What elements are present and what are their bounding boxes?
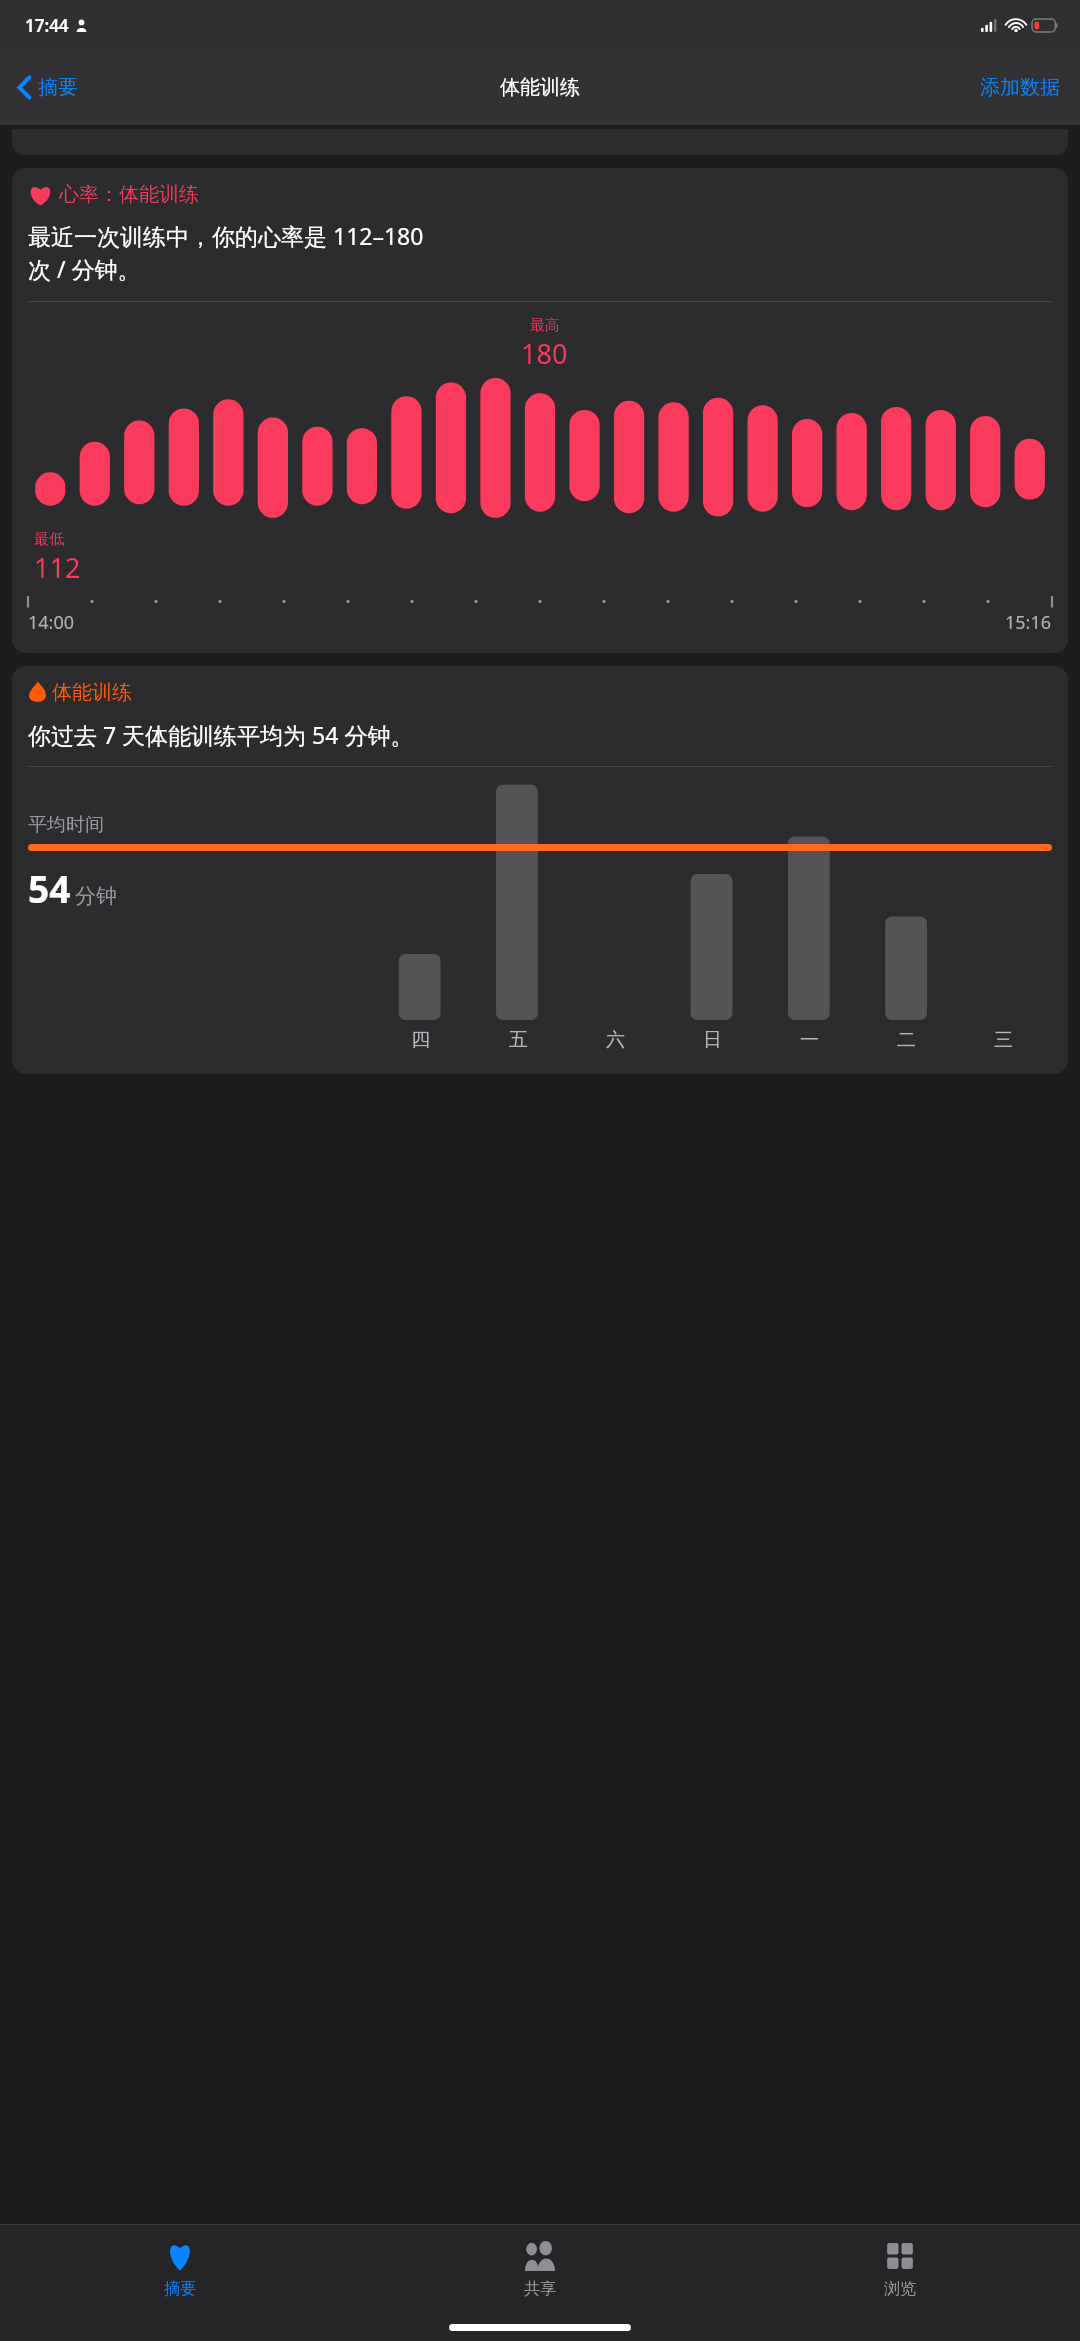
staticText: 17:44 [25, 14, 69, 37]
staticText: 日 [703, 1028, 722, 1052]
staticText: 平均时间 [28, 813, 104, 837]
staticText: 最低 [34, 530, 64, 549]
staticText: 摘要 [164, 2279, 196, 2299]
button[interactable]: 心率：体能训练 [12, 168, 1068, 653]
staticText: 最高 [530, 316, 560, 335]
staticText: 浏览 [884, 2279, 916, 2299]
button[interactable]: 浏览 [720, 2235, 1080, 2303]
button[interactable]: 添加数据 [974, 69, 1066, 106]
staticText: 14:00 [28, 610, 75, 635]
staticText: 添加数据 [980, 75, 1060, 100]
staticText: 你过去 7 天体能训练平均为 54 分钟。 [28, 719, 414, 750]
staticText: 112 [34, 549, 81, 586]
staticText: 最近一次训练中，你的心率是 112–180 次 / 分钟。 [28, 220, 424, 285]
button[interactable]: 摘要 [0, 2235, 360, 2303]
staticText: 体能训练 [500, 75, 580, 100]
staticText: 共享 [524, 2279, 556, 2299]
staticText: 一 [800, 1028, 819, 1052]
staticText: 摘要 [38, 75, 78, 100]
staticText: 分钟 [75, 883, 117, 909]
staticText: 54 [28, 863, 71, 913]
staticText: 三 [994, 1028, 1013, 1052]
staticText: 体能训练 [52, 680, 132, 705]
staticText: 180 [521, 335, 568, 372]
staticText: 二 [897, 1028, 916, 1052]
staticText: 15:16 [1005, 610, 1052, 635]
staticText: 六 [606, 1028, 625, 1052]
button[interactable]: 摘要 [12, 69, 84, 106]
staticText: 五 [509, 1028, 528, 1052]
button[interactable]: 共享 [360, 2235, 720, 2303]
staticText: 四 [411, 1028, 430, 1052]
button[interactable]: 体能训练 [12, 666, 1068, 1074]
staticText: 心率：体能训练 [59, 182, 199, 207]
